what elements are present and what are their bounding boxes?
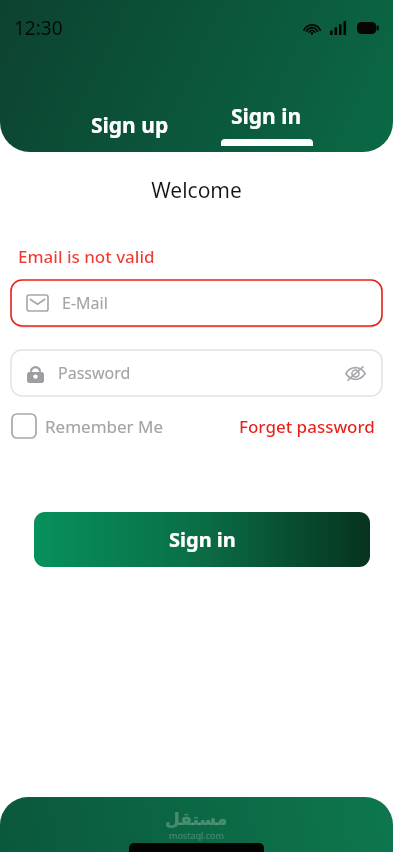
staticText: Sign in — [169, 526, 236, 553]
staticText: Forget password — [239, 415, 375, 438]
staticText: E-Mail — [62, 292, 108, 314]
staticText: mostaql.com — [169, 829, 224, 841]
staticText: Email is not valid — [18, 245, 155, 268]
staticText: Password — [58, 362, 345, 384]
button[interactable]: Sign in — [215, 96, 318, 137]
staticText: Sign up — [91, 111, 169, 140]
button[interactable]: Forget password — [239, 415, 381, 438]
button[interactable]: Sign up — [75, 105, 185, 146]
button[interactable]: E-Mail — [11, 280, 382, 326]
button[interactable]: Remember Me — [12, 414, 164, 438]
staticText: Remember Me — [45, 415, 164, 438]
button[interactable]: Password — [11, 350, 382, 396]
staticText: 12:30 — [14, 15, 63, 41]
staticText: Welcome — [0, 176, 393, 205]
staticText: مستقل — [165, 809, 228, 829]
button[interactable]: Show password — [345, 365, 366, 382]
staticText: Sign in — [231, 102, 302, 131]
button[interactable]: Sign in — [34, 512, 370, 567]
